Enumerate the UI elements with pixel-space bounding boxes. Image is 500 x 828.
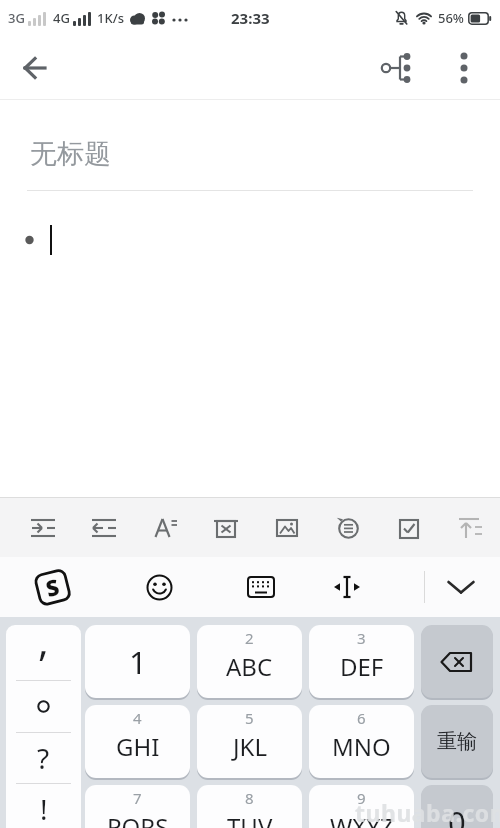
button[interactable]: 重输 xyxy=(421,705,493,778)
button[interactable] xyxy=(12,498,73,557)
staticText: 4 xyxy=(133,708,142,728)
button[interactable]: 0 xyxy=(421,785,493,828)
button[interactable]: S xyxy=(28,563,76,611)
staticText: 4G xyxy=(53,9,70,27)
button[interactable] xyxy=(439,565,483,609)
staticText: 1 xyxy=(129,641,147,683)
staticText: ? xyxy=(37,739,50,777)
button[interactable]: ? xyxy=(6,732,81,783)
button[interactable]: 6 xyxy=(309,705,414,778)
button[interactable] xyxy=(374,46,418,90)
button[interactable]: ! xyxy=(6,783,81,828)
button[interactable]: 4 xyxy=(85,705,190,778)
button[interactable]: 9 xyxy=(309,785,414,828)
staticText: 7 xyxy=(133,788,142,808)
staticText: 重输 xyxy=(437,729,477,754)
button[interactable] xyxy=(439,498,500,557)
button[interactable] xyxy=(13,46,57,90)
staticText: 3 xyxy=(357,628,366,648)
staticText: , xyxy=(38,625,49,667)
button[interactable] xyxy=(239,565,283,609)
staticText: JKL xyxy=(233,730,267,763)
staticText: 56% xyxy=(438,9,464,27)
staticText: ! xyxy=(40,790,48,828)
staticText: DEF xyxy=(340,650,384,683)
staticText: PQRS xyxy=(107,810,169,828)
button[interactable]: , xyxy=(6,625,81,680)
staticText: 无标题 xyxy=(30,137,111,171)
button[interactable] xyxy=(317,498,378,557)
button[interactable] xyxy=(256,498,317,557)
staticText: 9 xyxy=(357,788,366,808)
staticText: GHI xyxy=(116,730,160,763)
staticText: 23:33 xyxy=(231,8,270,28)
button[interactable] xyxy=(134,498,195,557)
button[interactable] xyxy=(325,565,369,609)
staticText: 6 xyxy=(357,708,366,728)
staticText: S xyxy=(42,571,62,603)
button[interactable] xyxy=(73,498,134,557)
button[interactable]: 3 xyxy=(309,625,414,698)
button[interactable] xyxy=(195,498,256,557)
button[interactable]: 1 xyxy=(85,625,190,698)
button[interactable]: 5 xyxy=(197,705,302,778)
button[interactable] xyxy=(378,498,439,557)
staticText: ABC xyxy=(226,650,273,683)
button[interactable] xyxy=(137,565,181,609)
staticText: 3G xyxy=(8,9,25,27)
button[interactable]: 2 xyxy=(197,625,302,698)
button[interactable]: 7 xyxy=(85,785,190,828)
staticText: MNO xyxy=(332,730,391,763)
button[interactable] xyxy=(421,625,493,698)
staticText: 2 xyxy=(245,628,254,648)
staticText: TUV xyxy=(227,810,273,828)
staticText: 1K/s xyxy=(97,9,124,27)
staticText: 5 xyxy=(245,708,254,728)
button[interactable] xyxy=(442,46,486,90)
button[interactable]: 8 xyxy=(197,785,302,828)
staticText: 0 xyxy=(448,801,466,828)
staticText: WXYZ xyxy=(330,810,394,828)
staticText: tuhuaba.com xyxy=(355,797,500,828)
staticText: 8 xyxy=(245,788,254,808)
button[interactable] xyxy=(6,680,81,732)
